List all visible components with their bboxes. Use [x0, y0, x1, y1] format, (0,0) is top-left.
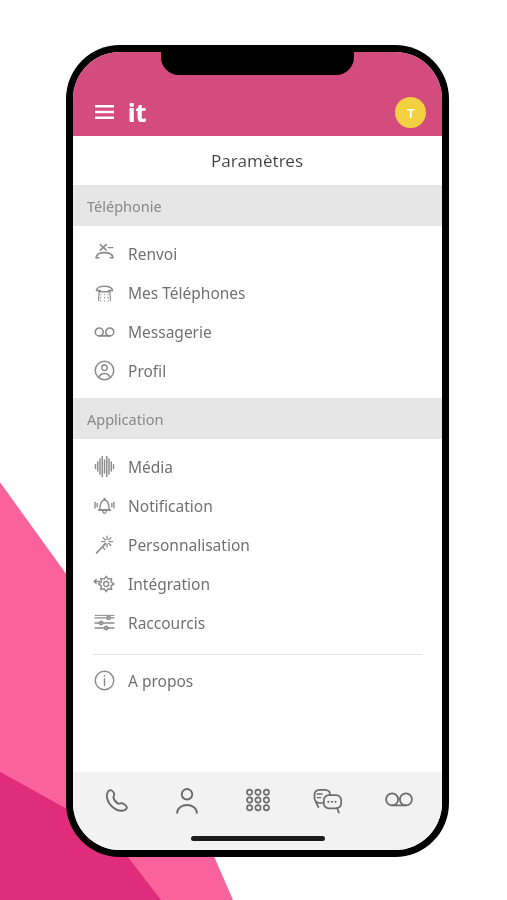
- staticText: T: [407, 104, 415, 122]
- button[interactable]: Menu: [89, 97, 119, 127]
- staticText: it: [128, 95, 147, 129]
- staticText: Notification: [128, 495, 213, 516]
- staticText: Téléphonie: [87, 196, 162, 216]
- button[interactable]: Contacts: [154, 772, 220, 828]
- button[interactable]: Intégration: [73, 564, 442, 603]
- button[interactable]: Média: [73, 447, 442, 486]
- staticText: Mes Téléphones: [128, 282, 246, 303]
- button[interactable]: Notification: [73, 486, 442, 525]
- button[interactable]: Profil: [73, 351, 442, 390]
- button[interactable]: Account: [395, 97, 426, 128]
- staticText: Média: [128, 456, 174, 477]
- button[interactable]: Messages: [295, 772, 361, 828]
- button[interactable]: Voicemail: [366, 772, 432, 828]
- staticText: Application: [87, 409, 164, 429]
- staticText: A propos: [128, 670, 194, 691]
- button[interactable]: Calls: [84, 772, 150, 828]
- button[interactable]: A propos: [73, 661, 442, 700]
- button[interactable]: Renvoi: [73, 234, 442, 273]
- staticText: Personnalisation: [128, 534, 250, 555]
- staticText: Messagerie: [128, 321, 212, 342]
- button[interactable]: Messagerie: [73, 312, 442, 351]
- button[interactable]: Keypad: [225, 772, 291, 828]
- staticText: Profil: [128, 360, 167, 381]
- staticText: Paramètres: [211, 149, 304, 172]
- button[interactable]: Raccourcis: [73, 603, 442, 642]
- button[interactable]: Mes Téléphones: [73, 273, 442, 312]
- staticText: Renvoi: [128, 243, 178, 264]
- staticText: Intégration: [128, 573, 211, 594]
- button[interactable]: Personnalisation: [73, 525, 442, 564]
- staticText: Raccourcis: [128, 612, 206, 633]
